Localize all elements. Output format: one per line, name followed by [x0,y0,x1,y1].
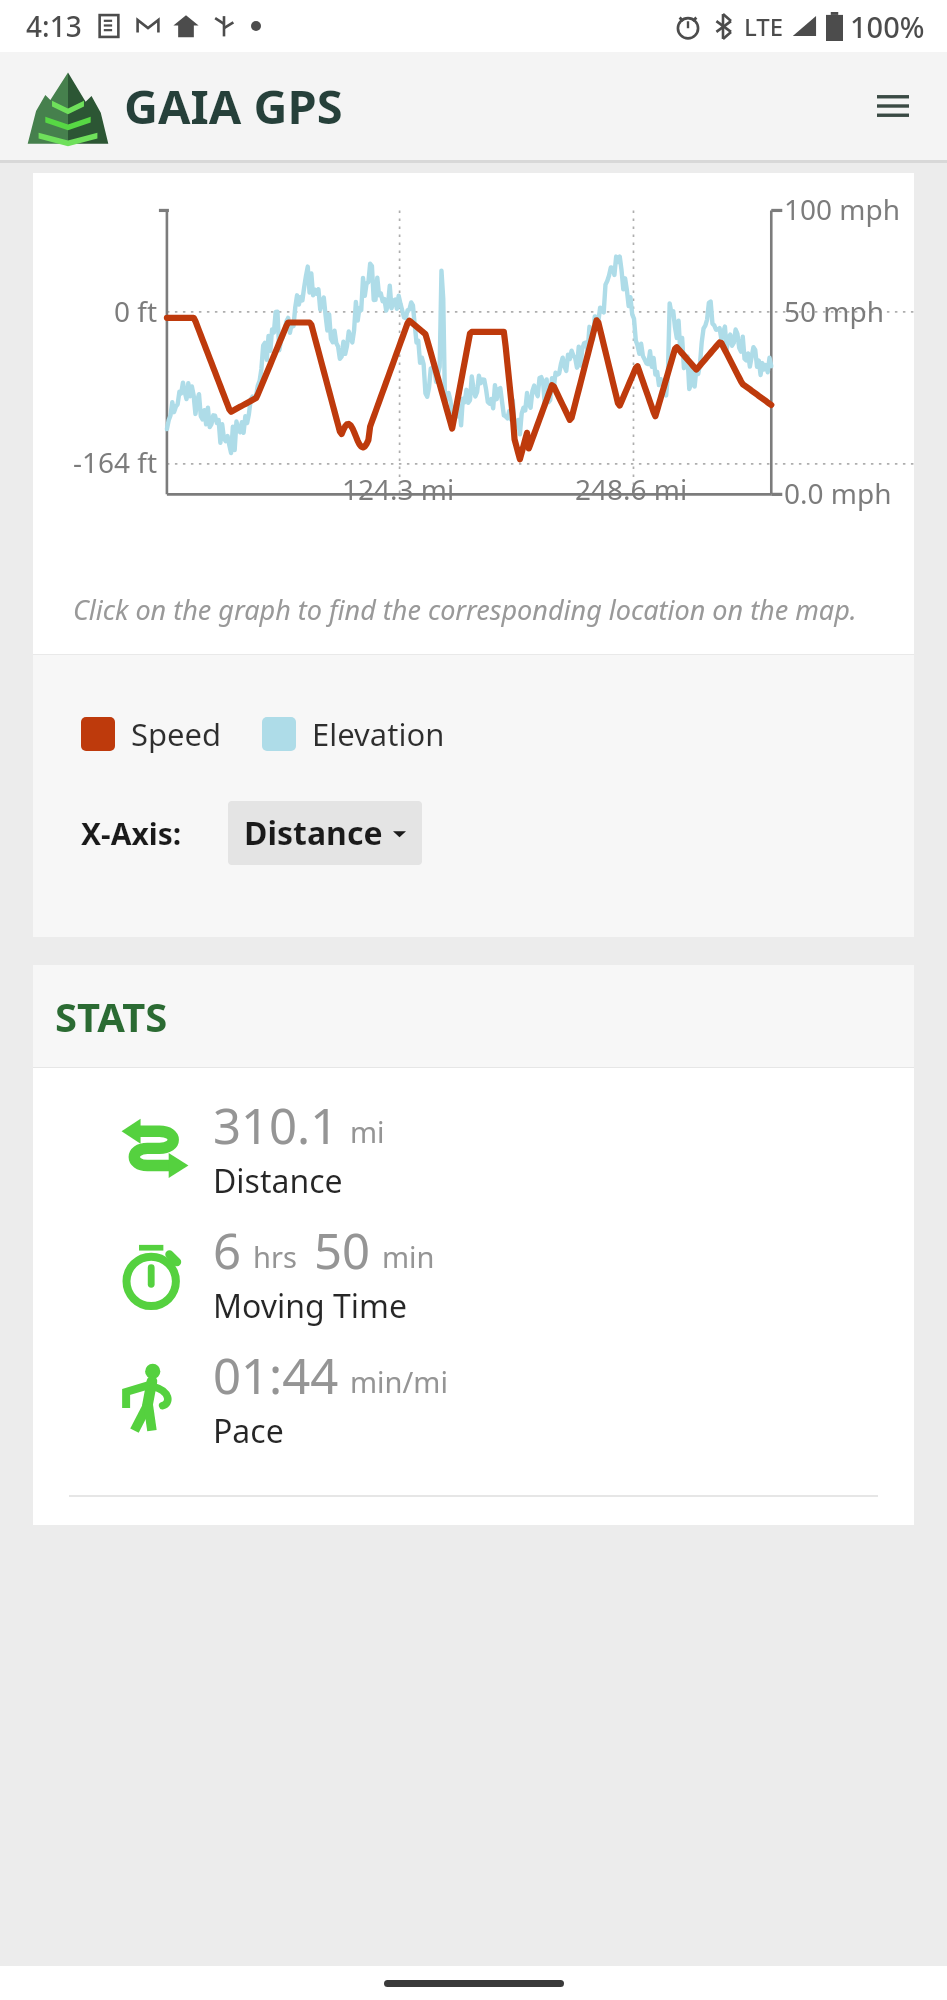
staticText: -164 ft [73,443,158,481]
staticText: hrs [253,1237,297,1276]
staticText: Moving Time [213,1284,408,1328]
staticText: 4:13 [26,7,82,45]
staticText: 0 ft [114,292,158,330]
button[interactable]: Distance [228,801,422,865]
staticText: 6 [213,1217,242,1284]
staticText: LTE [744,10,784,43]
staticText: Elevation [312,713,445,755]
button[interactable]: 310.1 [33,1092,914,1203]
staticText: 50 [314,1217,371,1284]
staticText: STATS [55,989,168,1043]
staticText: Distance [244,811,383,855]
staticText: 50 mph [784,292,885,330]
staticText: 0.0 mph [784,474,892,512]
staticText: GAIA GPS [124,74,343,138]
staticText: 310.1 [213,1092,339,1159]
button[interactable]: Open navigation menu [865,78,921,134]
staticText: 100 mph [784,190,901,228]
button[interactable]: 01:44 [33,1342,914,1453]
staticText: mi [350,1112,385,1151]
staticText: min [382,1237,435,1276]
staticText: 01:44 [213,1342,339,1409]
staticText: X-Axis: [81,813,182,854]
staticText: min/mi [350,1362,448,1401]
staticText: Pace [213,1409,284,1453]
button[interactable]: 6 [33,1217,914,1328]
staticText: Speed [131,713,222,755]
staticText: 100% [850,7,925,46]
staticText: Click on the graph to find the correspon… [73,591,857,628]
staticText: 124.3 mi [342,470,455,508]
staticText: Distance [213,1159,343,1203]
staticText: 248.6 mi [575,470,688,508]
